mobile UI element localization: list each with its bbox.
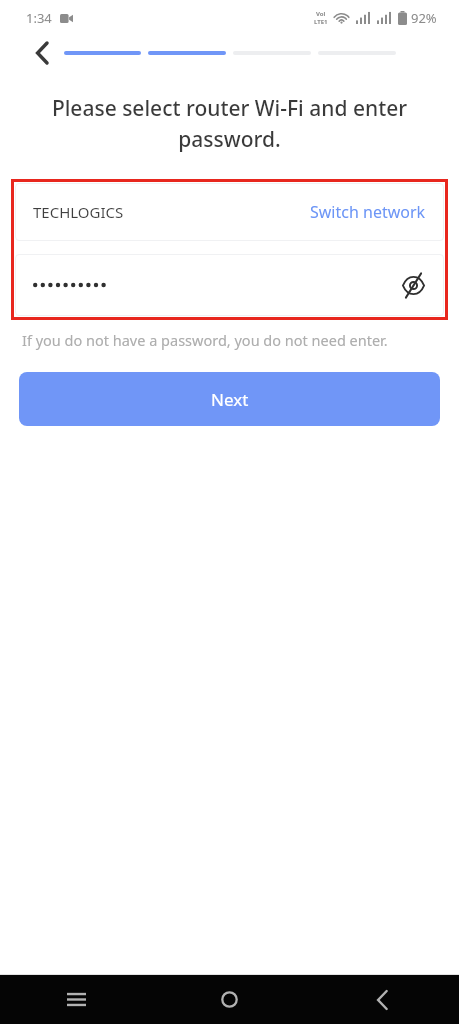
button[interactable]: TECHLOGICS <box>15 183 444 241</box>
button[interactable]: Home <box>153 975 306 1024</box>
staticText: Next <box>211 388 249 411</box>
button[interactable]: Show password <box>15 254 444 316</box>
staticText: 1:34 <box>26 9 52 27</box>
staticText: TECHLOGICS <box>33 202 124 222</box>
staticText: Please select router Wi-Fi and enter pas… <box>26 94 433 153</box>
button[interactable]: Show password <box>396 268 430 302</box>
button[interactable]: Next <box>19 372 440 426</box>
staticText: LTE1 <box>314 18 328 26</box>
staticText: Switch network <box>310 201 426 223</box>
button[interactable]: Back <box>306 975 459 1024</box>
button[interactable]: Recent apps <box>0 975 153 1024</box>
button[interactable]: Back <box>27 38 57 68</box>
staticText: 92% <box>411 9 437 27</box>
staticText: Vol <box>316 10 326 18</box>
staticText: If you do not have a password, you do no… <box>22 330 437 350</box>
